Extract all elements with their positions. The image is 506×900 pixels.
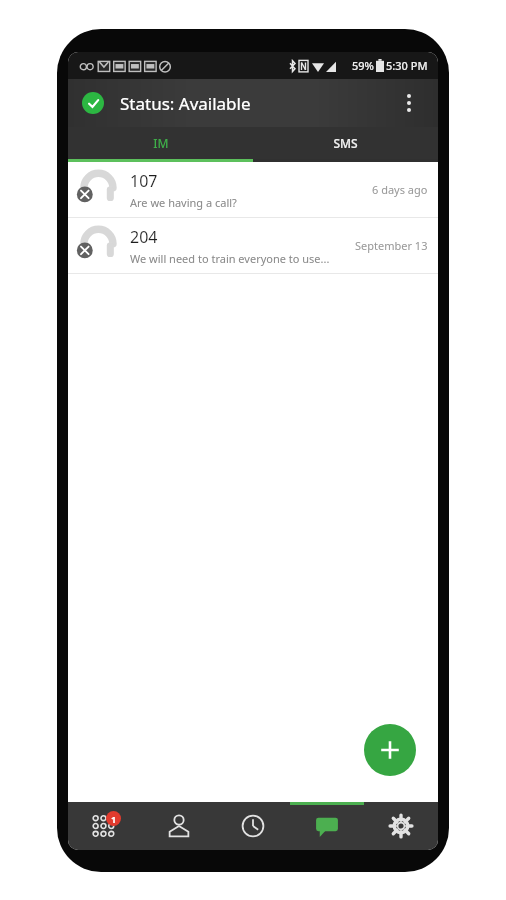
button[interactable]: Messages: [290, 802, 364, 850]
button[interactable]: IM: [68, 127, 253, 159]
button[interactable]: Settings: [364, 802, 438, 850]
staticText: Status: Available: [120, 92, 251, 115]
staticText: 59%: [352, 58, 374, 73]
staticText: 107: [130, 170, 158, 192]
staticText: SMS: [333, 135, 358, 151]
button[interactable]: Available status: [82, 92, 104, 114]
button[interactable]: SMS: [253, 127, 438, 159]
button[interactable]: 107: [68, 162, 438, 217]
staticText: We will need to train everyone to use...: [130, 251, 330, 266]
staticText: 6 days ago: [372, 182, 428, 197]
staticText: 204: [130, 226, 158, 248]
button[interactable]: More options: [394, 88, 424, 118]
button[interactable]: New conversation: [364, 724, 416, 776]
staticText: 1: [111, 813, 117, 825]
staticText: IM: [153, 135, 169, 151]
staticText: 5:30 PM: [386, 58, 428, 73]
button[interactable]: 204: [68, 218, 438, 273]
button[interactable]: Recents: [216, 802, 290, 850]
button[interactable]: Dialpad: [68, 802, 142, 850]
button[interactable]: Contacts: [142, 802, 216, 850]
staticText: Are we having a call?: [130, 195, 237, 210]
staticText: September 13: [355, 238, 428, 253]
